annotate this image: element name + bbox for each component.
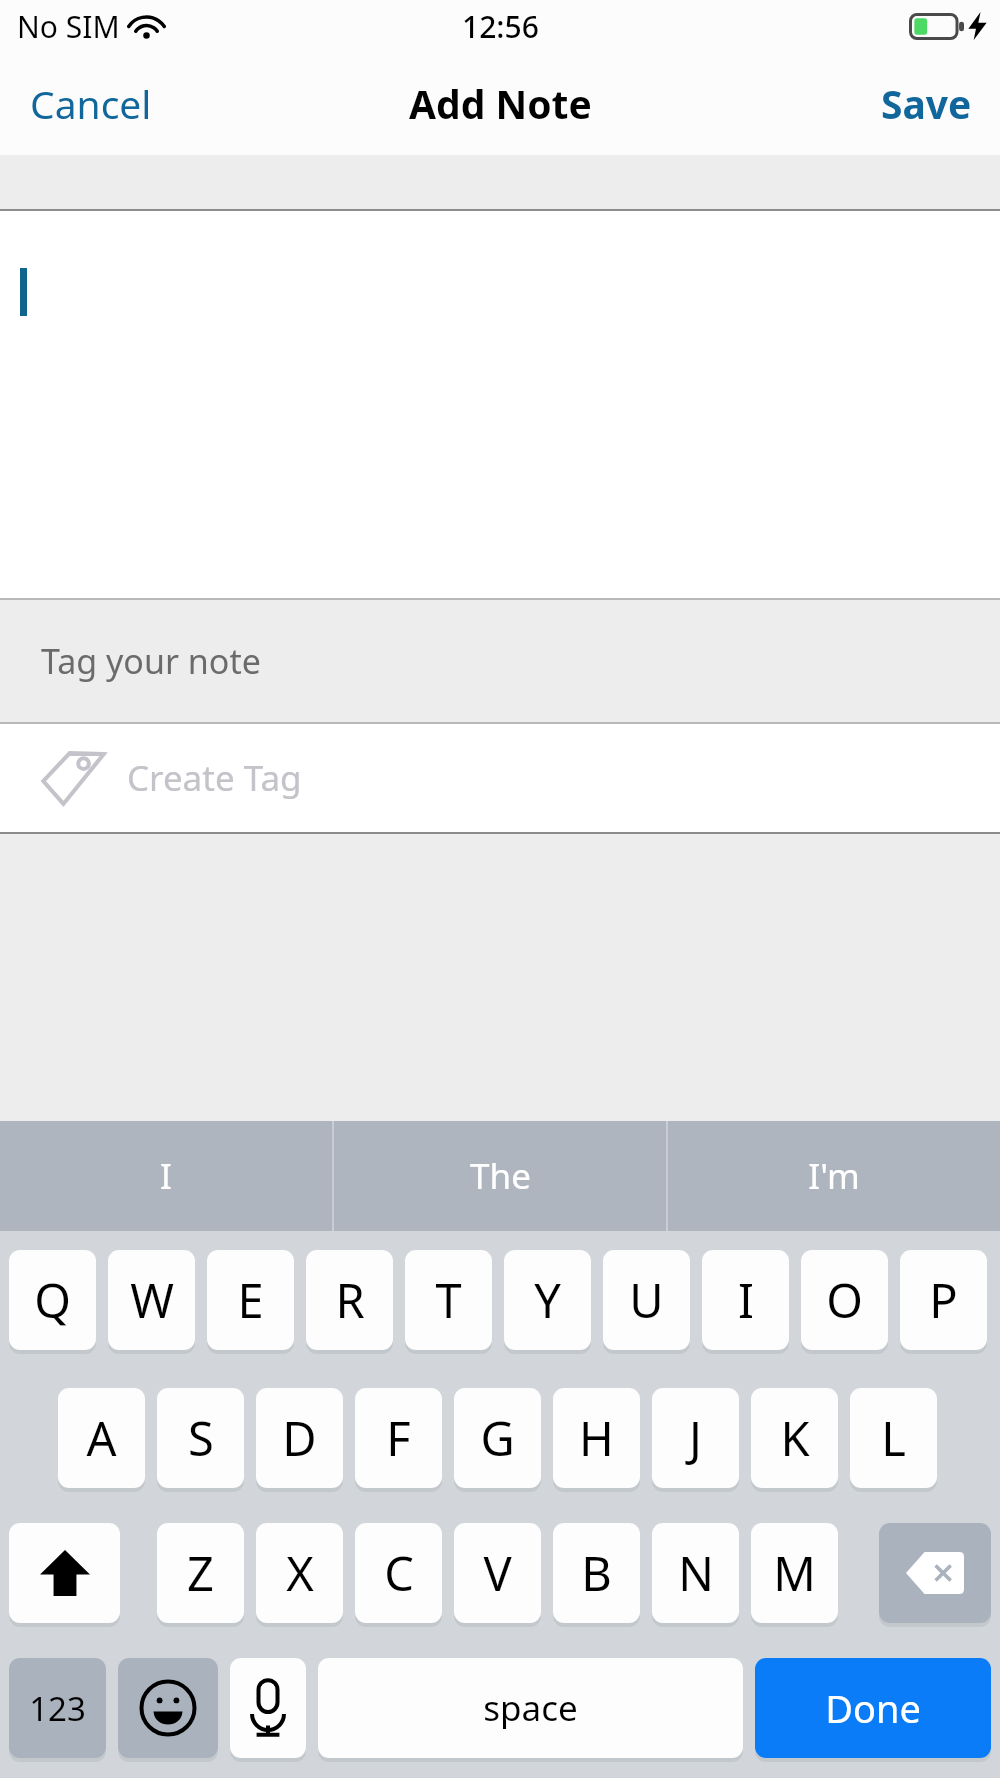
staticText: V [483,1541,512,1605]
staticText: J [689,1406,702,1470]
staticText: U [629,1268,664,1332]
staticText: I [160,1152,172,1200]
staticText: 12:56 [462,6,539,47]
staticText: R [335,1268,365,1332]
staticText: W [130,1268,174,1332]
staticText: A [86,1406,117,1470]
staticText: I'm [808,1152,860,1200]
button[interactable]: 123 [9,1658,106,1758]
button[interactable]: A [58,1388,145,1488]
staticText: Create Tag [127,754,302,802]
button[interactable]: Dictate [230,1658,306,1758]
staticText: D [282,1406,317,1470]
staticText: Q [34,1268,71,1332]
button[interactable]: G [454,1388,541,1488]
staticText: M [773,1541,816,1605]
button[interactable]: V [454,1523,541,1623]
button[interactable]: M [751,1523,838,1623]
button[interactable]: S [157,1388,244,1488]
staticText: S [188,1406,214,1470]
staticText: P [929,1268,958,1332]
staticText: F [386,1406,411,1470]
button[interactable]: space [318,1658,743,1758]
staticText: Z [187,1541,214,1605]
button[interactable]: Cancel [0,59,178,148]
button[interactable]: Shift [9,1523,120,1623]
button[interactable]: H [553,1388,640,1488]
button[interactable]: F [355,1388,442,1488]
staticText: Y [534,1268,561,1332]
staticText: L [881,1406,906,1470]
staticText: K [780,1406,810,1470]
button[interactable]: O [801,1250,888,1350]
button[interactable]: U [603,1250,690,1350]
button[interactable]: L [850,1388,937,1488]
other: Wi-Fi [131,14,162,39]
button[interactable]: Emoji [118,1658,218,1758]
staticText: B [581,1541,612,1605]
button[interactable]: C [355,1523,442,1623]
button[interactable]: J [652,1388,739,1488]
button[interactable]: T [405,1250,492,1350]
button[interactable]: Done [755,1658,991,1758]
staticText: Save [881,77,972,130]
staticText: No SIM [17,6,120,47]
button[interactable]: Q [9,1250,96,1350]
staticText: Tag your note [41,638,261,684]
staticText: G [480,1406,515,1470]
button[interactable]: R [306,1250,393,1350]
button[interactable]: Z [157,1523,244,1623]
button[interactable]: Create Tag [0,724,1000,832]
button[interactable]: B [553,1523,640,1623]
staticText: H [579,1406,614,1470]
staticText: I [738,1268,754,1332]
button[interactable]: Backspace [879,1523,991,1623]
staticText: N [678,1541,714,1605]
staticText: space [483,1684,578,1732]
staticText: C [384,1541,414,1605]
other: Battery [909,13,964,40]
staticText: T [435,1268,462,1332]
button[interactable]: Y [504,1250,591,1350]
button[interactable]: I [702,1250,789,1350]
button[interactable]: X [256,1523,343,1623]
staticText: Cancel [30,77,152,130]
staticText: 123 [29,1686,86,1731]
button[interactable]: D [256,1388,343,1488]
button[interactable]: N [652,1523,739,1623]
staticText: Done [825,1682,921,1734]
button[interactable]: P [900,1250,987,1350]
staticText: O [826,1268,863,1332]
button[interactable]: I [0,1121,332,1231]
button[interactable]: W [108,1250,195,1350]
staticText: X [286,1541,314,1605]
staticText: The [470,1152,531,1200]
staticText: E [237,1268,264,1332]
button[interactable]: E [207,1250,294,1350]
button[interactable]: K [751,1388,838,1488]
staticText: Add Note [409,77,592,130]
button[interactable]: I'm [668,1121,1000,1231]
button[interactable]: Save [855,59,1000,148]
button[interactable]: The [334,1121,666,1231]
